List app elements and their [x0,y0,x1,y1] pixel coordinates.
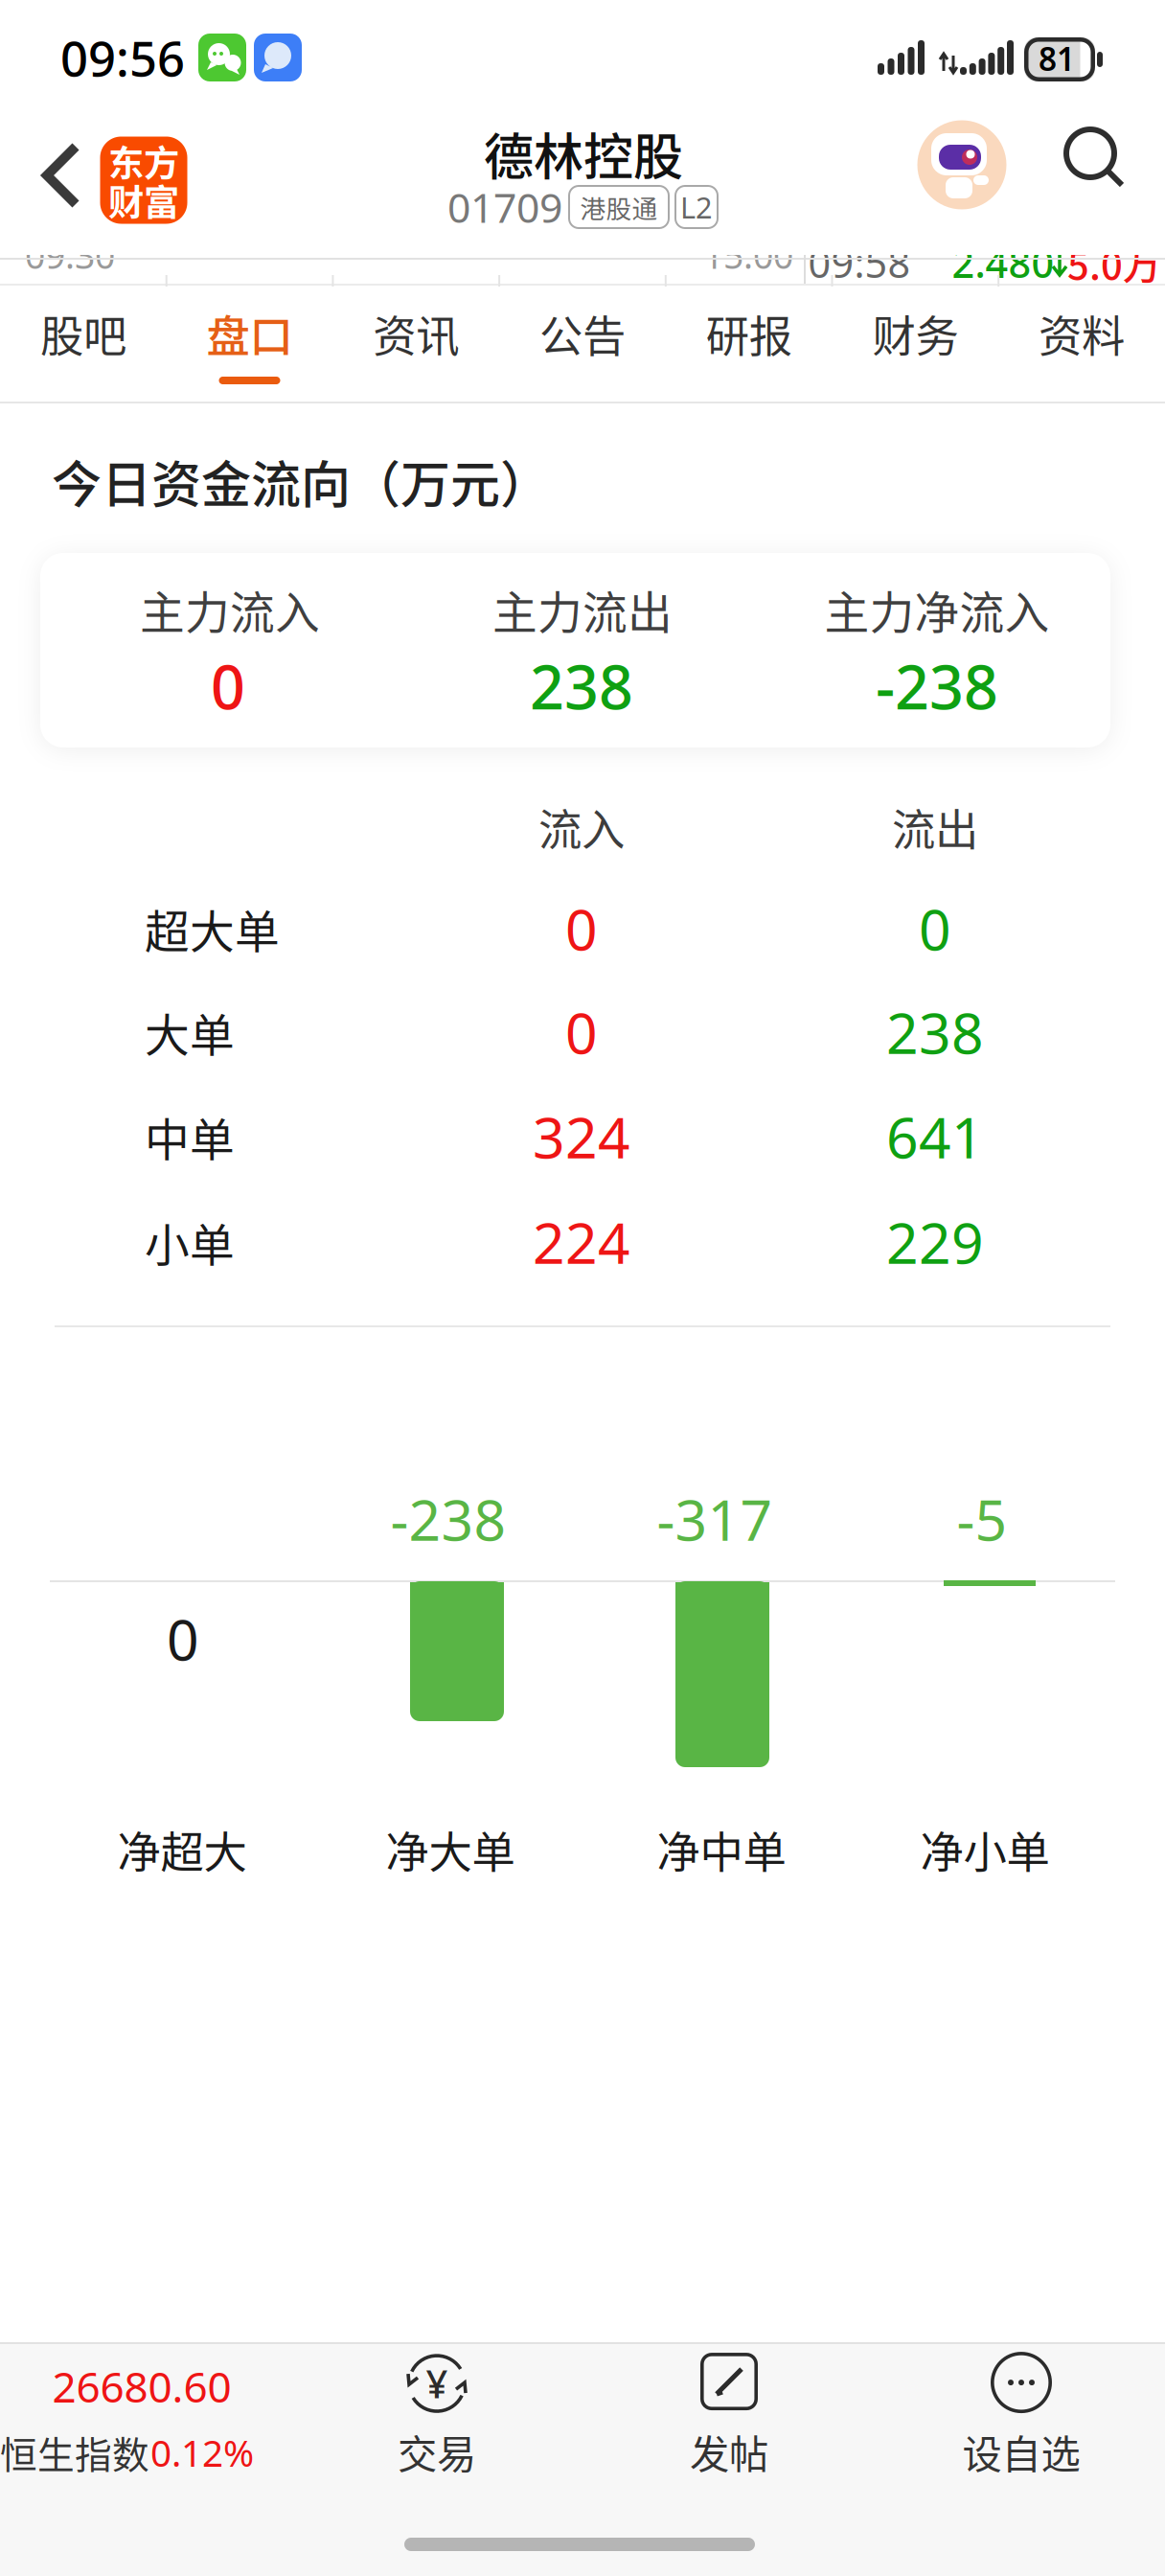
button[interactable]: 资料 [999,276,1165,391]
staticText: 研报 [706,302,792,365]
staticText: 0 [167,1601,199,1676]
staticText: 09:56 [60,25,185,90]
staticText: 641 [886,1099,984,1174]
staticText: 324 [533,1099,630,1174]
button[interactable]: 26680.60 [0,2357,278,2483]
button[interactable]: 公告 [500,276,665,391]
staticText: 今日资金流向（万元） [52,445,550,517]
staticText: 德林控股 [484,117,683,189]
staticText: 0 [565,891,598,966]
button[interactable]: 设自选 [962,2352,1080,2480]
staticText: 交易 [398,2423,476,2480]
staticText: -317 [657,1482,773,1556]
staticText: 主力流入 [140,577,320,642]
staticText: 0 [919,891,951,966]
staticText: -5 [957,1482,1007,1556]
staticText: 主力净流入 [824,577,1050,642]
staticText: 净超大 [117,1818,247,1881]
button[interactable] [917,120,1006,209]
staticText: 大单 [145,1000,235,1065]
staticText: 超大单 [145,896,280,961]
staticText: 5.0万 [1067,235,1161,290]
staticText: 中单 [145,1104,235,1169]
button[interactable]: 资讯 [333,276,499,391]
staticText: 净大单 [386,1818,515,1881]
staticText: 主力流出 [492,577,673,642]
staticText: 资讯 [373,302,459,365]
button[interactable] [41,142,81,209]
staticText: 净中单 [657,1818,786,1881]
staticText: 0 [211,646,245,726]
staticText: 发帖 [690,2423,768,2480]
staticText: 恒生指数 [0,2426,149,2479]
staticText: 盘口 [207,302,293,365]
staticText: 流入 [538,796,625,858]
staticText: ¥ [426,2358,448,2409]
button[interactable]: ¥ [398,2352,476,2480]
staticText: 流出 [892,796,978,858]
button[interactable]: 股吧 [0,276,166,391]
staticText: 238 [530,646,633,726]
button[interactable]: 盘口 [167,276,333,391]
staticText: 81 [1039,37,1075,80]
staticText: 15:00 [703,231,793,279]
staticText: 财务 [872,302,958,365]
staticText: 0.12% [150,2428,254,2477]
button[interactable] [1063,126,1125,188]
staticText: 股吧 [40,302,126,365]
staticText: 港股通 [580,189,658,225]
staticText: -238 [876,646,998,726]
staticText: 财富 [108,174,179,226]
staticText: 09:30 [25,231,115,279]
staticText: 0 [565,995,598,1069]
staticText: 净小单 [920,1818,1050,1881]
staticText: 229 [886,1205,984,1279]
button[interactable]: 财务 [832,276,998,391]
staticText: L2 [680,187,713,226]
staticText: 设自选 [962,2423,1080,2480]
staticText: 2.480 [952,236,1054,289]
staticText: 01709 [447,180,562,234]
staticText: 资料 [1039,302,1125,365]
staticText: 224 [533,1205,630,1279]
button[interactable]: 研报 [666,276,832,391]
button[interactable]: 东方 [100,137,187,224]
staticText: 公告 [539,302,626,365]
button[interactable]: 发帖 [690,2352,768,2480]
staticText: -238 [390,1482,506,1556]
staticText: 09:58 [808,236,911,289]
staticText: 小单 [145,1210,235,1274]
staticText: 东方 [108,135,179,187]
staticText: 238 [886,995,984,1069]
staticText: 26680.60 [52,2358,231,2414]
